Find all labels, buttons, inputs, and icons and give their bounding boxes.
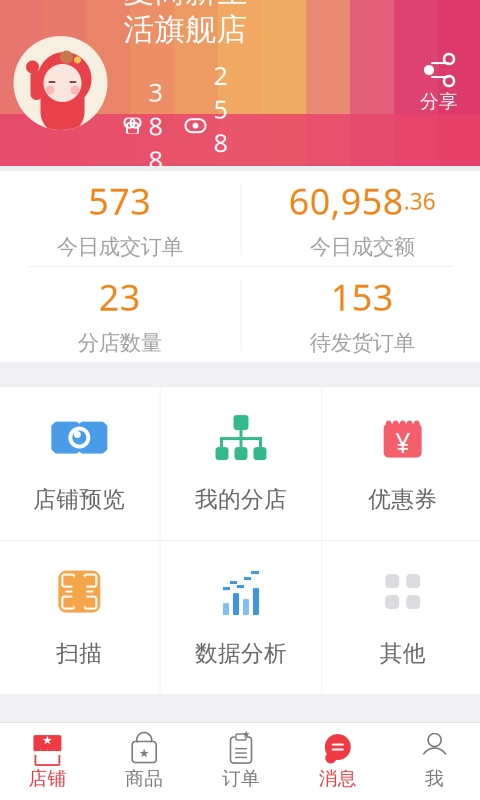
button[interactable]: 数据分析 — [161, 541, 321, 694]
staticText: 分店数量 — [78, 330, 162, 356]
staticText: 我的分店 — [195, 486, 287, 513]
button[interactable]: 其他 — [322, 541, 480, 694]
staticText: 待发货订单 — [310, 330, 415, 356]
staticText: 店铺预览 — [33, 486, 125, 513]
button[interactable]: ¥ — [322, 387, 480, 540]
staticText: 573 — [88, 177, 151, 225]
staticText: ★ — [139, 746, 150, 760]
staticText: 今日成交订单 — [57, 234, 183, 260]
staticText: 今日成交额 — [310, 234, 415, 260]
button[interactable]: 店铺预览 — [0, 387, 160, 540]
button[interactable]: 分享 — [407, 48, 471, 118]
staticText: 扫描 — [56, 640, 102, 667]
button[interactable]: ★ — [0, 723, 96, 799]
button[interactable]: 我的分店 — [161, 387, 321, 540]
staticText: 388 — [148, 75, 162, 176]
button[interactable]: 消息 — [289, 723, 386, 799]
button[interactable]: ★ — [193, 723, 289, 799]
staticText: 分享 — [420, 90, 458, 113]
staticText: 153 — [331, 273, 394, 321]
staticText: 其他 — [380, 640, 426, 667]
staticText: 23 — [99, 273, 141, 321]
staticText: 2589 — [213, 58, 227, 193]
button[interactable]: 我 — [386, 723, 480, 799]
staticText: 商品 — [125, 767, 163, 790]
staticText: 消息 — [319, 767, 357, 790]
staticText: 夏商新生活旗舰店 — [123, 0, 247, 48]
staticText: 订单 — [222, 767, 260, 790]
staticText: 60,958 — [289, 177, 404, 225]
staticText: ★ — [242, 729, 250, 739]
staticText: 优惠券 — [368, 486, 437, 513]
staticText: 店铺 — [28, 767, 66, 790]
staticText: 我 — [425, 767, 444, 790]
staticText: ★ — [42, 733, 53, 747]
button[interactable]: 扫描 — [0, 541, 160, 694]
staticText: 数据分析 — [195, 640, 287, 667]
staticText: .36 — [404, 186, 436, 216]
staticText: ¥ — [395, 425, 410, 460]
button[interactable]: ★ — [96, 723, 193, 799]
